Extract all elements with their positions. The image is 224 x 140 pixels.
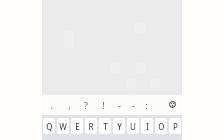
staticText: , <box>68 99 71 111</box>
staticText: U <box>130 121 136 132</box>
button[interactable]: O <box>155 118 167 134</box>
button[interactable]: P <box>169 118 181 134</box>
staticText: E <box>75 121 80 132</box>
button[interactable]: : <box>137 95 155 114</box>
button[interactable]: - <box>110 95 128 114</box>
button[interactable]: ! <box>94 95 112 114</box>
staticText: P <box>173 121 178 132</box>
button[interactable]: U <box>127 118 139 134</box>
staticText: W <box>59 121 67 132</box>
button[interactable]: - <box>124 95 142 114</box>
button[interactable]: . <box>42 95 60 114</box>
staticText: Y <box>117 121 122 132</box>
button[interactable]: Q <box>43 118 55 134</box>
button[interactable]: R <box>85 118 97 134</box>
staticText: . <box>50 99 53 111</box>
staticText: T <box>103 121 108 132</box>
button[interactable]: , <box>60 95 78 114</box>
staticText: ? <box>84 99 88 111</box>
staticText: - <box>118 99 121 111</box>
button[interactable]: T <box>99 118 111 134</box>
button[interactable]: ? <box>77 95 95 114</box>
button[interactable]: Emoji <box>163 95 181 114</box>
staticText: ! <box>102 99 105 111</box>
button[interactable]: W <box>57 118 69 134</box>
staticText: : <box>145 99 148 111</box>
staticText: O <box>158 121 165 132</box>
staticText: R <box>88 121 94 132</box>
button[interactable]: E <box>71 118 83 134</box>
staticText: - <box>132 99 135 111</box>
staticText: Q <box>46 121 53 132</box>
staticText: I <box>146 121 149 132</box>
button[interactable]: Y <box>113 118 125 134</box>
button[interactable]: I <box>141 118 153 134</box>
